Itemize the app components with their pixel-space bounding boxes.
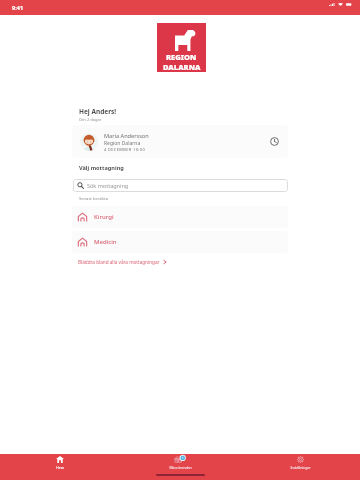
staticText: Hej Anders! (79, 107, 117, 116)
button[interactable]: Medicin (72, 231, 288, 253)
button[interactable]: Sök mottagning (73, 179, 288, 192)
other: Mina ärenden (174, 456, 186, 463)
staticText: Om 2 dagar (79, 117, 102, 122)
staticText: Bläddra bland alla våra mottagningar (78, 259, 160, 265)
button[interactable]: Kirurgi (72, 206, 288, 228)
other: Inställningar (297, 456, 304, 463)
button[interactable]: Bläddra bland alla våra mottagningar (78, 258, 167, 266)
staticText: Välj mottagning (79, 164, 124, 172)
staticText: Inställningar (290, 465, 311, 470)
button[interactable]: Hem (0, 454, 120, 474)
staticText: DALARNA (163, 62, 201, 72)
staticText: Kirurgi (94, 213, 114, 221)
staticText: Maria Andersson (104, 132, 149, 140)
staticText: REGION (166, 52, 197, 62)
staticText: 9:41 (12, 4, 24, 12)
staticText: Medicin (94, 238, 117, 246)
staticText: Region Dalarna (104, 140, 141, 147)
button[interactable]: Inställningar (240, 454, 360, 474)
other: Visa tid (270, 137, 279, 146)
staticText: Mina ärenden (169, 465, 192, 470)
button[interactable]: Mina ärenden (120, 454, 240, 474)
staticText: Senast besökta (79, 196, 109, 202)
button[interactable]: Maria Andersson (72, 125, 288, 158)
staticText: 4 DECEMBER 10:00 (104, 147, 146, 152)
staticText: Hem (56, 465, 64, 470)
staticText: Sök mottagning (87, 182, 129, 189)
other: Hem (56, 456, 64, 463)
